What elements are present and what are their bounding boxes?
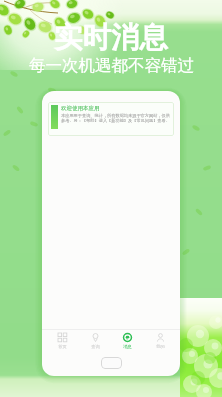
staticText: 每一次机遇都不容错过: [29, 55, 194, 76]
staticText: 我的: [156, 344, 165, 349]
staticText: 欢迎使用本应用: [61, 105, 100, 112]
button[interactable]: 消息: [114, 333, 140, 349]
staticText: 首页: [58, 344, 67, 349]
staticText: 消息: [123, 344, 132, 349]
button[interactable]: 查询: [82, 333, 108, 349]
button[interactable]: 欢迎使用本应用: [48, 102, 174, 136]
button[interactable]: Home: [101, 357, 122, 369]
button[interactable]: 我的: [147, 333, 173, 349]
button[interactable]: 首页: [49, 333, 75, 349]
staticText: 实时消息: [54, 20, 168, 56]
staticText: 查询: [91, 344, 100, 349]
staticText: 本应用用于查询、统计，所有数据均来源于官方网站，仅供参考。另：【帮助】进入【新功…: [61, 113, 171, 123]
